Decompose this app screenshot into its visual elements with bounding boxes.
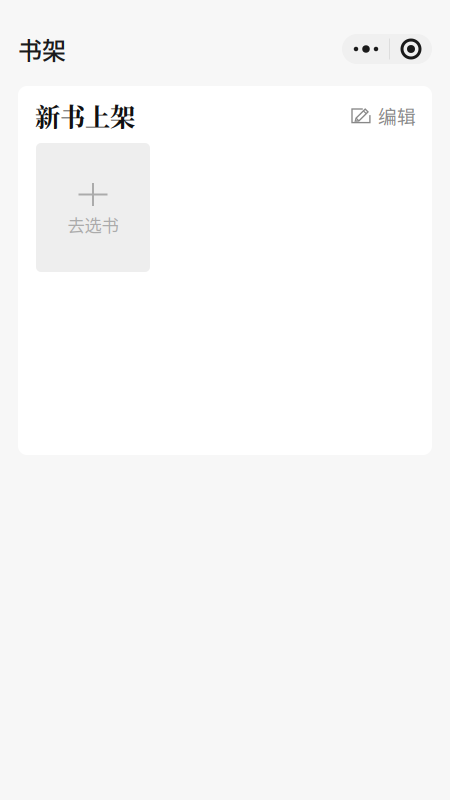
staticText: 新书上架	[35, 97, 135, 134]
staticText: 去选书	[67, 212, 118, 237]
button[interactable]: Close	[390, 34, 432, 64]
staticText: 书架	[18, 32, 66, 66]
button[interactable]: 编辑	[351, 102, 416, 129]
staticText: 编辑	[378, 102, 416, 129]
button[interactable]: 去选书	[36, 143, 150, 272]
button[interactable]: More	[342, 34, 390, 64]
